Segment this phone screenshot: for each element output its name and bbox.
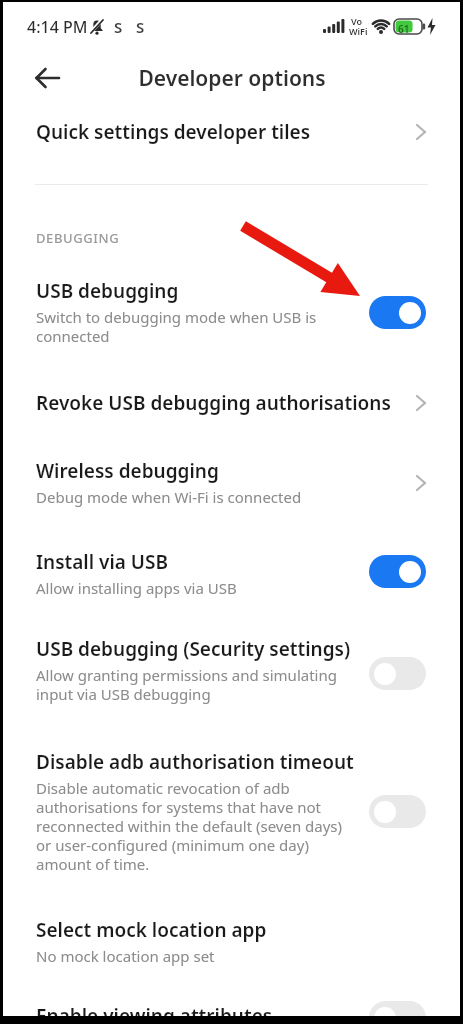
staticText: 4:14 PM: [27, 16, 88, 38]
staticText: Switch to debugging mode when USB is con…: [36, 307, 317, 347]
button[interactable]: Enable viewing attributes: [3, 998, 460, 1024]
button[interactable]: Wireless debugging: [3, 446, 460, 518]
staticText: Enable viewing attributes: [36, 1003, 273, 1024]
staticText: No mock location app set: [36, 946, 215, 966]
staticText: USB debugging (Security settings): [36, 636, 351, 662]
button[interactable]: [369, 657, 426, 690]
staticText: Vo: [351, 15, 363, 27]
staticText: S: [114, 17, 123, 37]
staticText: Disable automatic revocation of adb auth…: [36, 778, 343, 875]
staticText: Allow granting permissions and simulatin…: [36, 665, 337, 705]
button[interactable]: USB debugging (Security settings): [3, 628, 460, 712]
staticText: Quick settings developer tiles: [36, 119, 311, 145]
staticText: Install via USB: [36, 549, 169, 575]
button[interactable]: Install via USB: [3, 538, 460, 608]
staticText: DEBUGGING: [36, 229, 120, 247]
staticText: Developer options: [138, 64, 326, 93]
button[interactable]: [369, 555, 426, 588]
button[interactable]: Quick settings developer tiles: [3, 104, 460, 160]
staticText: Wireless debugging: [36, 458, 219, 484]
staticText: Select mock location app: [36, 917, 267, 943]
button[interactable]: Select mock location app: [3, 906, 460, 976]
staticText: USB debugging: [36, 278, 179, 304]
staticText: Disable adb authorisation timeout: [36, 749, 354, 775]
button[interactable]: Revoke USB debugging authorisations: [3, 376, 460, 430]
staticText: Debug mode when Wi-Fi is connected: [36, 487, 302, 507]
staticText: Allow installing apps via USB: [36, 578, 237, 598]
staticText: Revoke USB debugging authorisations: [36, 390, 391, 416]
button[interactable]: Disable adb authorisation timeout: [3, 740, 460, 884]
button[interactable]: [369, 795, 426, 828]
staticText: WiFi: [349, 25, 368, 37]
button[interactable]: [369, 296, 426, 329]
button[interactable]: [24, 54, 72, 102]
staticText: 61: [398, 22, 410, 36]
button[interactable]: USB debugging: [3, 268, 460, 356]
button[interactable]: [369, 1001, 426, 1024]
staticText: S: [136, 17, 145, 37]
